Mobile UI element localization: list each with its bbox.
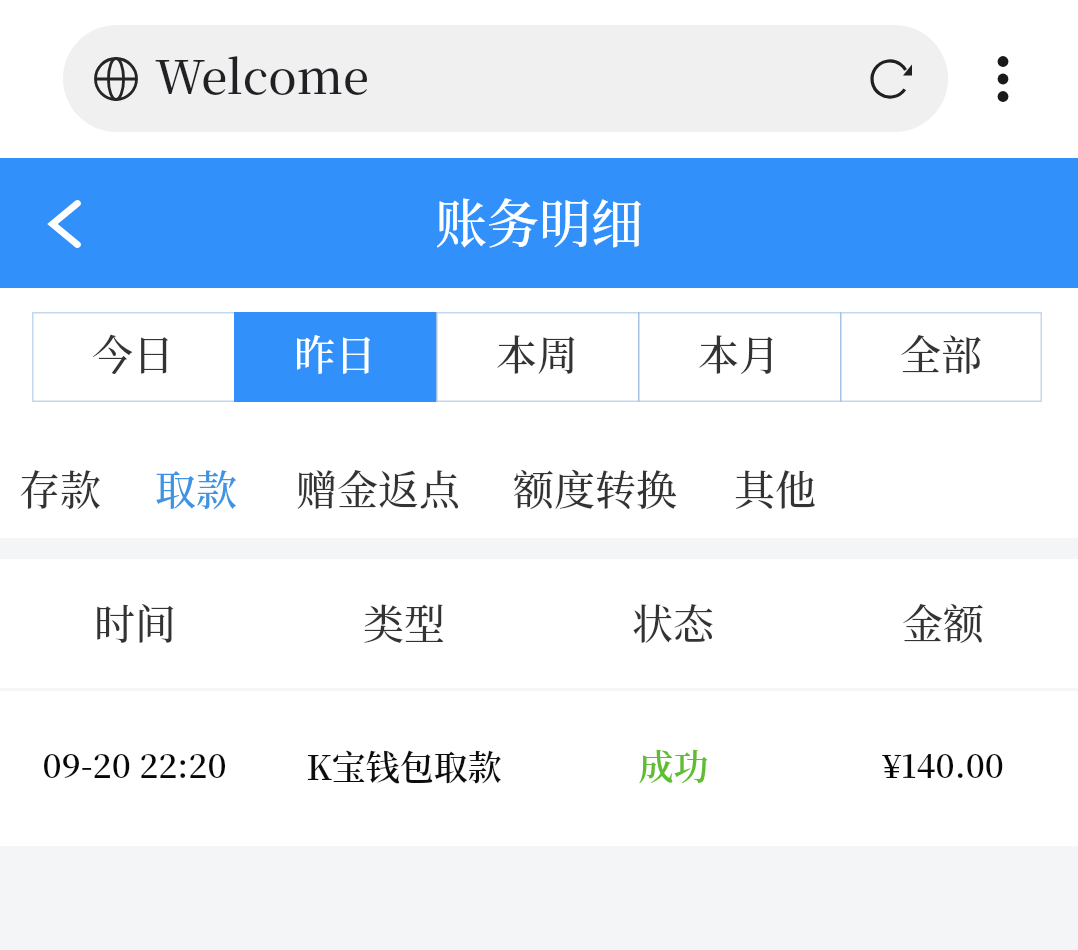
button[interactable]: 昨日 <box>234 312 436 402</box>
staticText: 时间 <box>94 592 176 651</box>
button[interactable]: 赠金返点 <box>283 440 473 536</box>
staticText: 成功 <box>638 740 709 790</box>
staticText: 本月 <box>698 323 780 382</box>
button[interactable]: 取款 <box>142 440 250 536</box>
staticText: Welcome <box>155 40 369 108</box>
button[interactable]: 09-20 22:20 <box>0 690 1078 846</box>
button[interactable]: 全部 <box>840 312 1042 402</box>
staticText: ¥140.00 <box>882 740 1004 787</box>
staticText: 本周 <box>496 323 578 382</box>
staticText: 金额 <box>902 592 984 651</box>
button[interactable]: More options <box>968 44 1038 114</box>
staticText: 09-20 22:20 <box>42 740 227 787</box>
staticText: K宝钱包取款 <box>306 741 502 790</box>
button[interactable]: 其他 <box>721 440 829 536</box>
button[interactable]: 今日 <box>32 312 234 402</box>
button[interactable]: 额度转换 <box>500 440 690 536</box>
staticText: 全部 <box>900 323 982 382</box>
staticText: 取款 <box>155 458 237 517</box>
button[interactable]: Reload <box>855 44 925 114</box>
button[interactable]: 存款 <box>6 440 114 536</box>
button[interactable]: Back <box>0 158 125 288</box>
staticText: 今日 <box>92 323 174 382</box>
staticText: 存款 <box>19 458 101 517</box>
staticText: 额度转换 <box>513 458 677 517</box>
staticText: 类型 <box>363 592 445 651</box>
button[interactable]: 本月 <box>638 312 840 402</box>
staticText: 赠金返点 <box>296 458 460 517</box>
button[interactable]: Welcome <box>63 25 948 132</box>
button[interactable]: 本周 <box>436 312 638 402</box>
staticText: 其他 <box>734 458 816 517</box>
staticText: 账务明细 <box>435 183 644 258</box>
staticText: 昨日 <box>294 323 376 382</box>
staticText: 状态 <box>632 592 714 651</box>
